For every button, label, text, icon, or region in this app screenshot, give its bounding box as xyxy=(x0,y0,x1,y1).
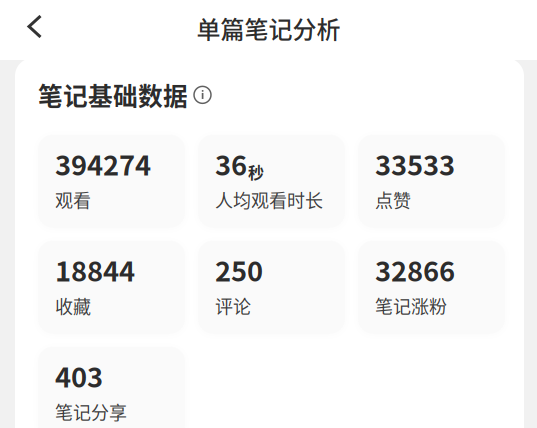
staticText: 32866 xyxy=(375,250,455,289)
staticText: 18844 xyxy=(55,250,135,289)
staticText: 笔记基础数据 xyxy=(38,77,188,113)
staticText: 点赞 xyxy=(375,187,411,213)
button[interactable]: Back xyxy=(0,0,58,58)
staticText: 收藏 xyxy=(55,293,91,319)
button[interactable]: Info xyxy=(194,86,211,103)
staticText: 笔记分享 xyxy=(55,399,127,425)
button[interactable]: 18844 xyxy=(38,241,185,334)
staticText: 观看 xyxy=(55,187,91,213)
staticText: 评论 xyxy=(215,293,251,319)
staticText: 笔记涨粉 xyxy=(375,293,447,319)
button[interactable]: 36 xyxy=(198,135,345,228)
button[interactable]: 394274 xyxy=(38,135,185,228)
staticText: 33533 xyxy=(375,144,455,183)
button[interactable]: 250 xyxy=(198,241,345,334)
staticText: 250 xyxy=(215,250,263,289)
button[interactable]: 32866 xyxy=(358,241,505,334)
staticText: 36 xyxy=(215,144,247,183)
staticText: 秒 xyxy=(248,160,264,183)
staticText: 人均观看时长 xyxy=(215,187,323,213)
staticText: 单篇笔记分析 xyxy=(196,11,340,45)
button[interactable]: 403 xyxy=(38,347,185,428)
button[interactable]: 33533 xyxy=(358,135,505,228)
staticText: 394274 xyxy=(55,144,151,183)
staticText: 403 xyxy=(55,356,103,395)
